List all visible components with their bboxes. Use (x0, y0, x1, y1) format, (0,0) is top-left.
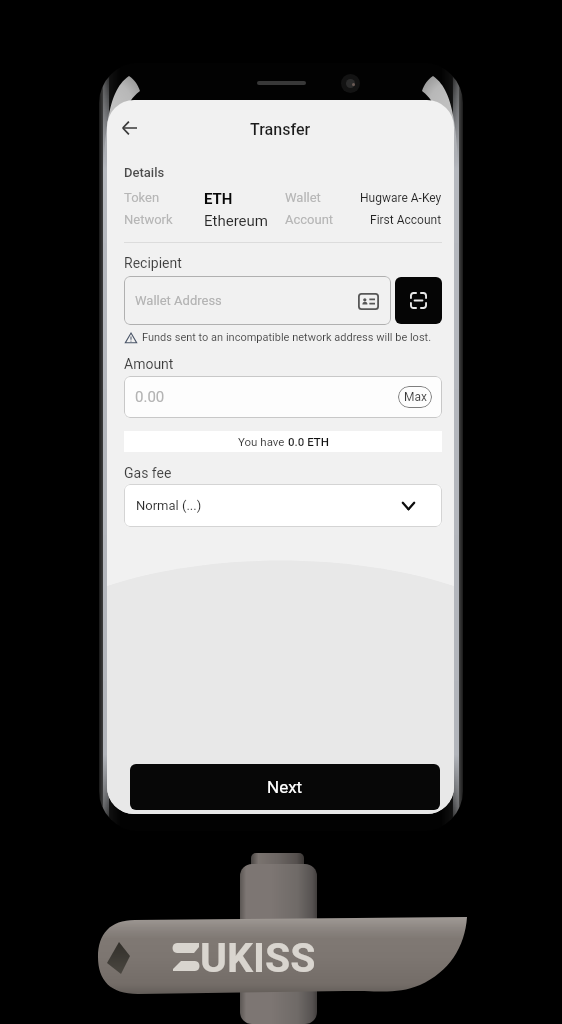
staticText: Gas fee (124, 465, 172, 481)
staticText: You have (238, 435, 288, 448)
staticText: UKISS (200, 934, 316, 982)
staticText: Hugware A-Key (360, 191, 442, 205)
button[interactable]: Wallet Address (124, 276, 391, 325)
button[interactable]: Scan QR code (395, 277, 442, 324)
button[interactable]: Max (398, 386, 432, 408)
staticText: Recipient (124, 255, 182, 271)
staticText: First Account (370, 213, 442, 227)
button[interactable]: Back (108, 103, 151, 152)
staticText: Wallet (285, 190, 321, 205)
staticText: Ethereum (204, 212, 268, 230)
button[interactable]: 0.00 (124, 376, 442, 418)
staticText: 0.00 (135, 388, 165, 406)
staticText: Network (124, 212, 173, 227)
button[interactable]: Normal (...) (124, 484, 442, 527)
staticText: Account (285, 212, 334, 227)
staticText: Normal (...) (136, 498, 202, 513)
staticText: Amount (124, 356, 174, 372)
staticText: Transfer (250, 120, 311, 139)
staticText: ETH (204, 190, 233, 208)
button[interactable]: Next (130, 764, 440, 810)
button[interactable]: You have (124, 431, 442, 452)
staticText: Funds sent to an incompatible network ad… (142, 331, 432, 344)
staticText: Next (267, 777, 303, 797)
staticText: Max (404, 390, 427, 404)
staticText: Wallet Address (135, 293, 222, 308)
staticText: Token (124, 190, 160, 205)
staticText: Details (124, 165, 165, 180)
button[interactable]: Choose contact (357, 290, 379, 312)
staticText: 0.0 ETH (288, 435, 329, 448)
